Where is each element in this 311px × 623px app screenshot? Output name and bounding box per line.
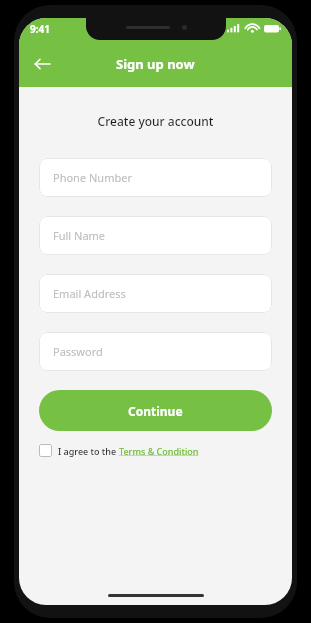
staticText: Terms & Condition (119, 445, 199, 457)
staticText: Full Name (53, 228, 106, 243)
button[interactable]: Email Address (39, 274, 272, 313)
button[interactable]: Password (39, 332, 272, 371)
button[interactable]: Phone Number (39, 158, 272, 197)
staticText: Email Address (53, 286, 126, 301)
staticText: Phone Number (53, 170, 132, 185)
staticText: Password (53, 344, 103, 359)
button[interactable]: Full Name (39, 216, 272, 255)
button[interactable]: Back (25, 47, 59, 81)
staticText: I agree to the (58, 445, 119, 457)
staticText: Create your account (39, 113, 272, 129)
staticText: Sign up now (116, 55, 195, 73)
button[interactable]: Continue (39, 390, 272, 431)
staticText: 9:41 (30, 22, 50, 36)
staticText: Continue (128, 403, 183, 419)
button[interactable]: I agree to the (39, 444, 199, 457)
